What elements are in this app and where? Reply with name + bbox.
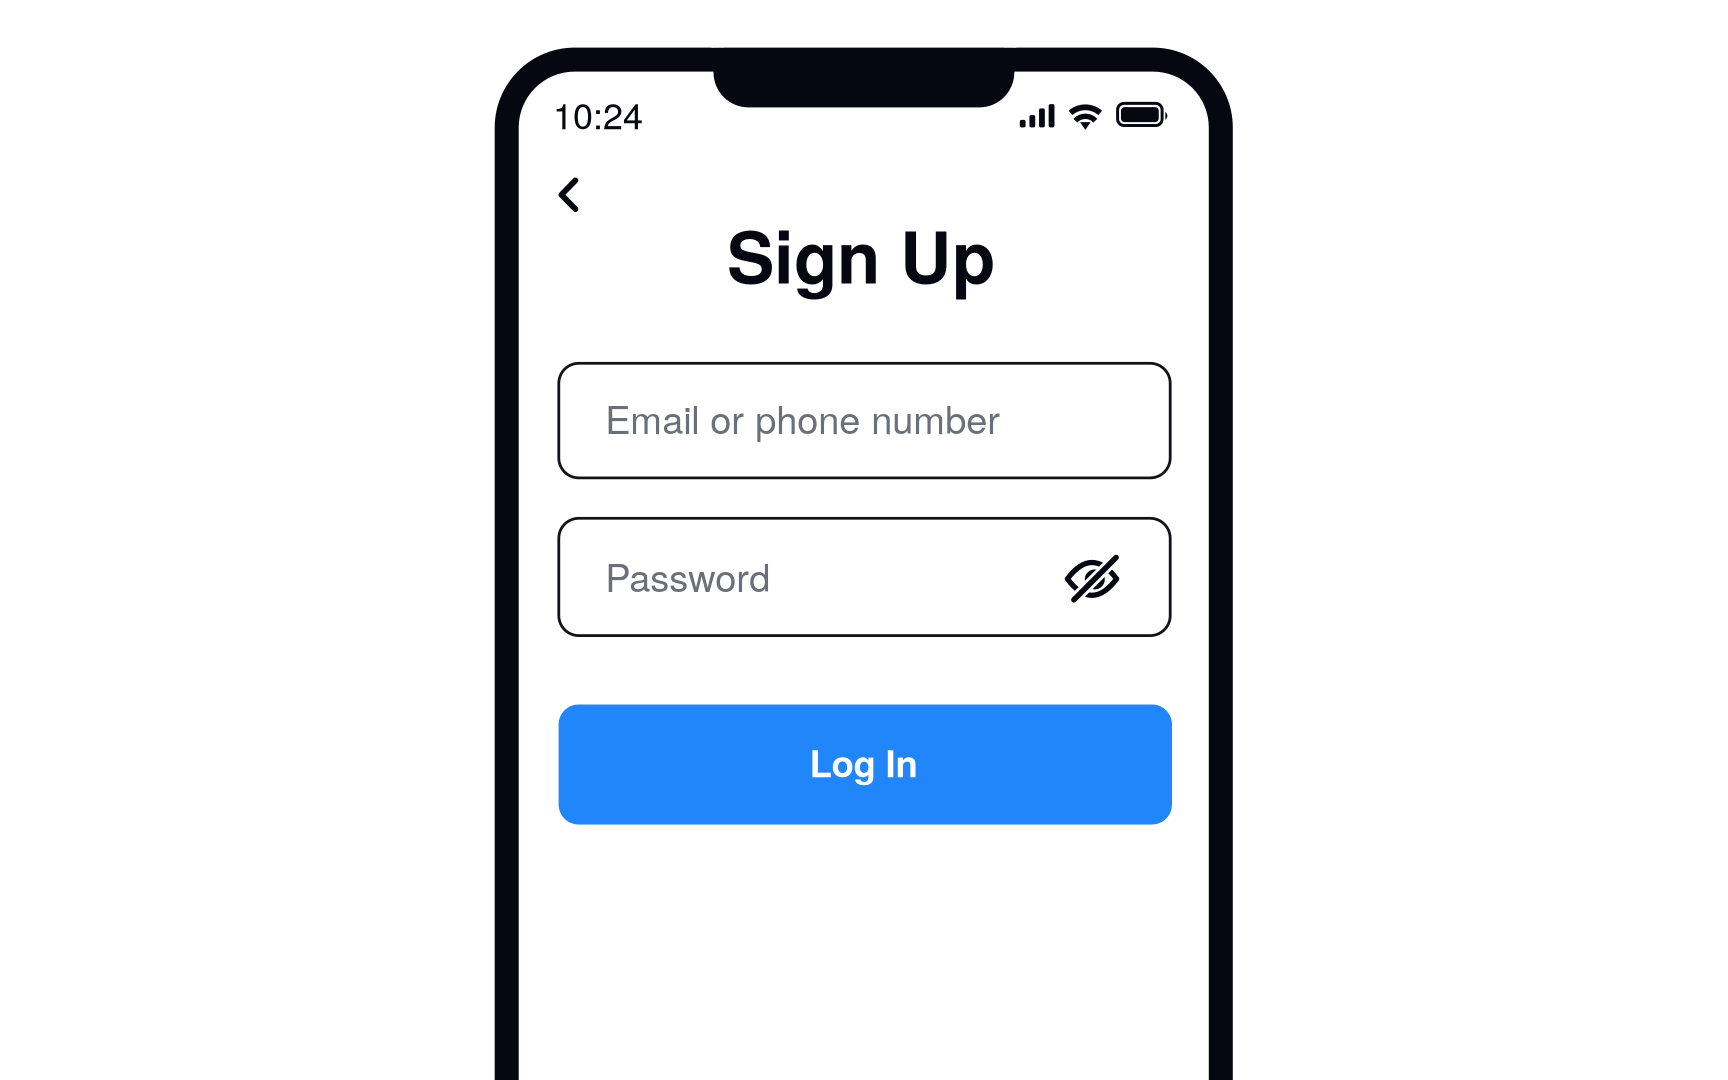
staticText: 10:24 xyxy=(553,88,643,139)
button[interactable]: Back xyxy=(0,0,1728,1080)
staticText: Email or phone number xyxy=(605,390,1000,445)
button[interactable]: Log In xyxy=(0,0,1728,1080)
button[interactable]: Show password xyxy=(0,0,1728,1080)
staticText: Sign Up xyxy=(727,203,995,305)
staticText: Log In xyxy=(809,736,917,788)
staticText: Password xyxy=(605,548,770,603)
